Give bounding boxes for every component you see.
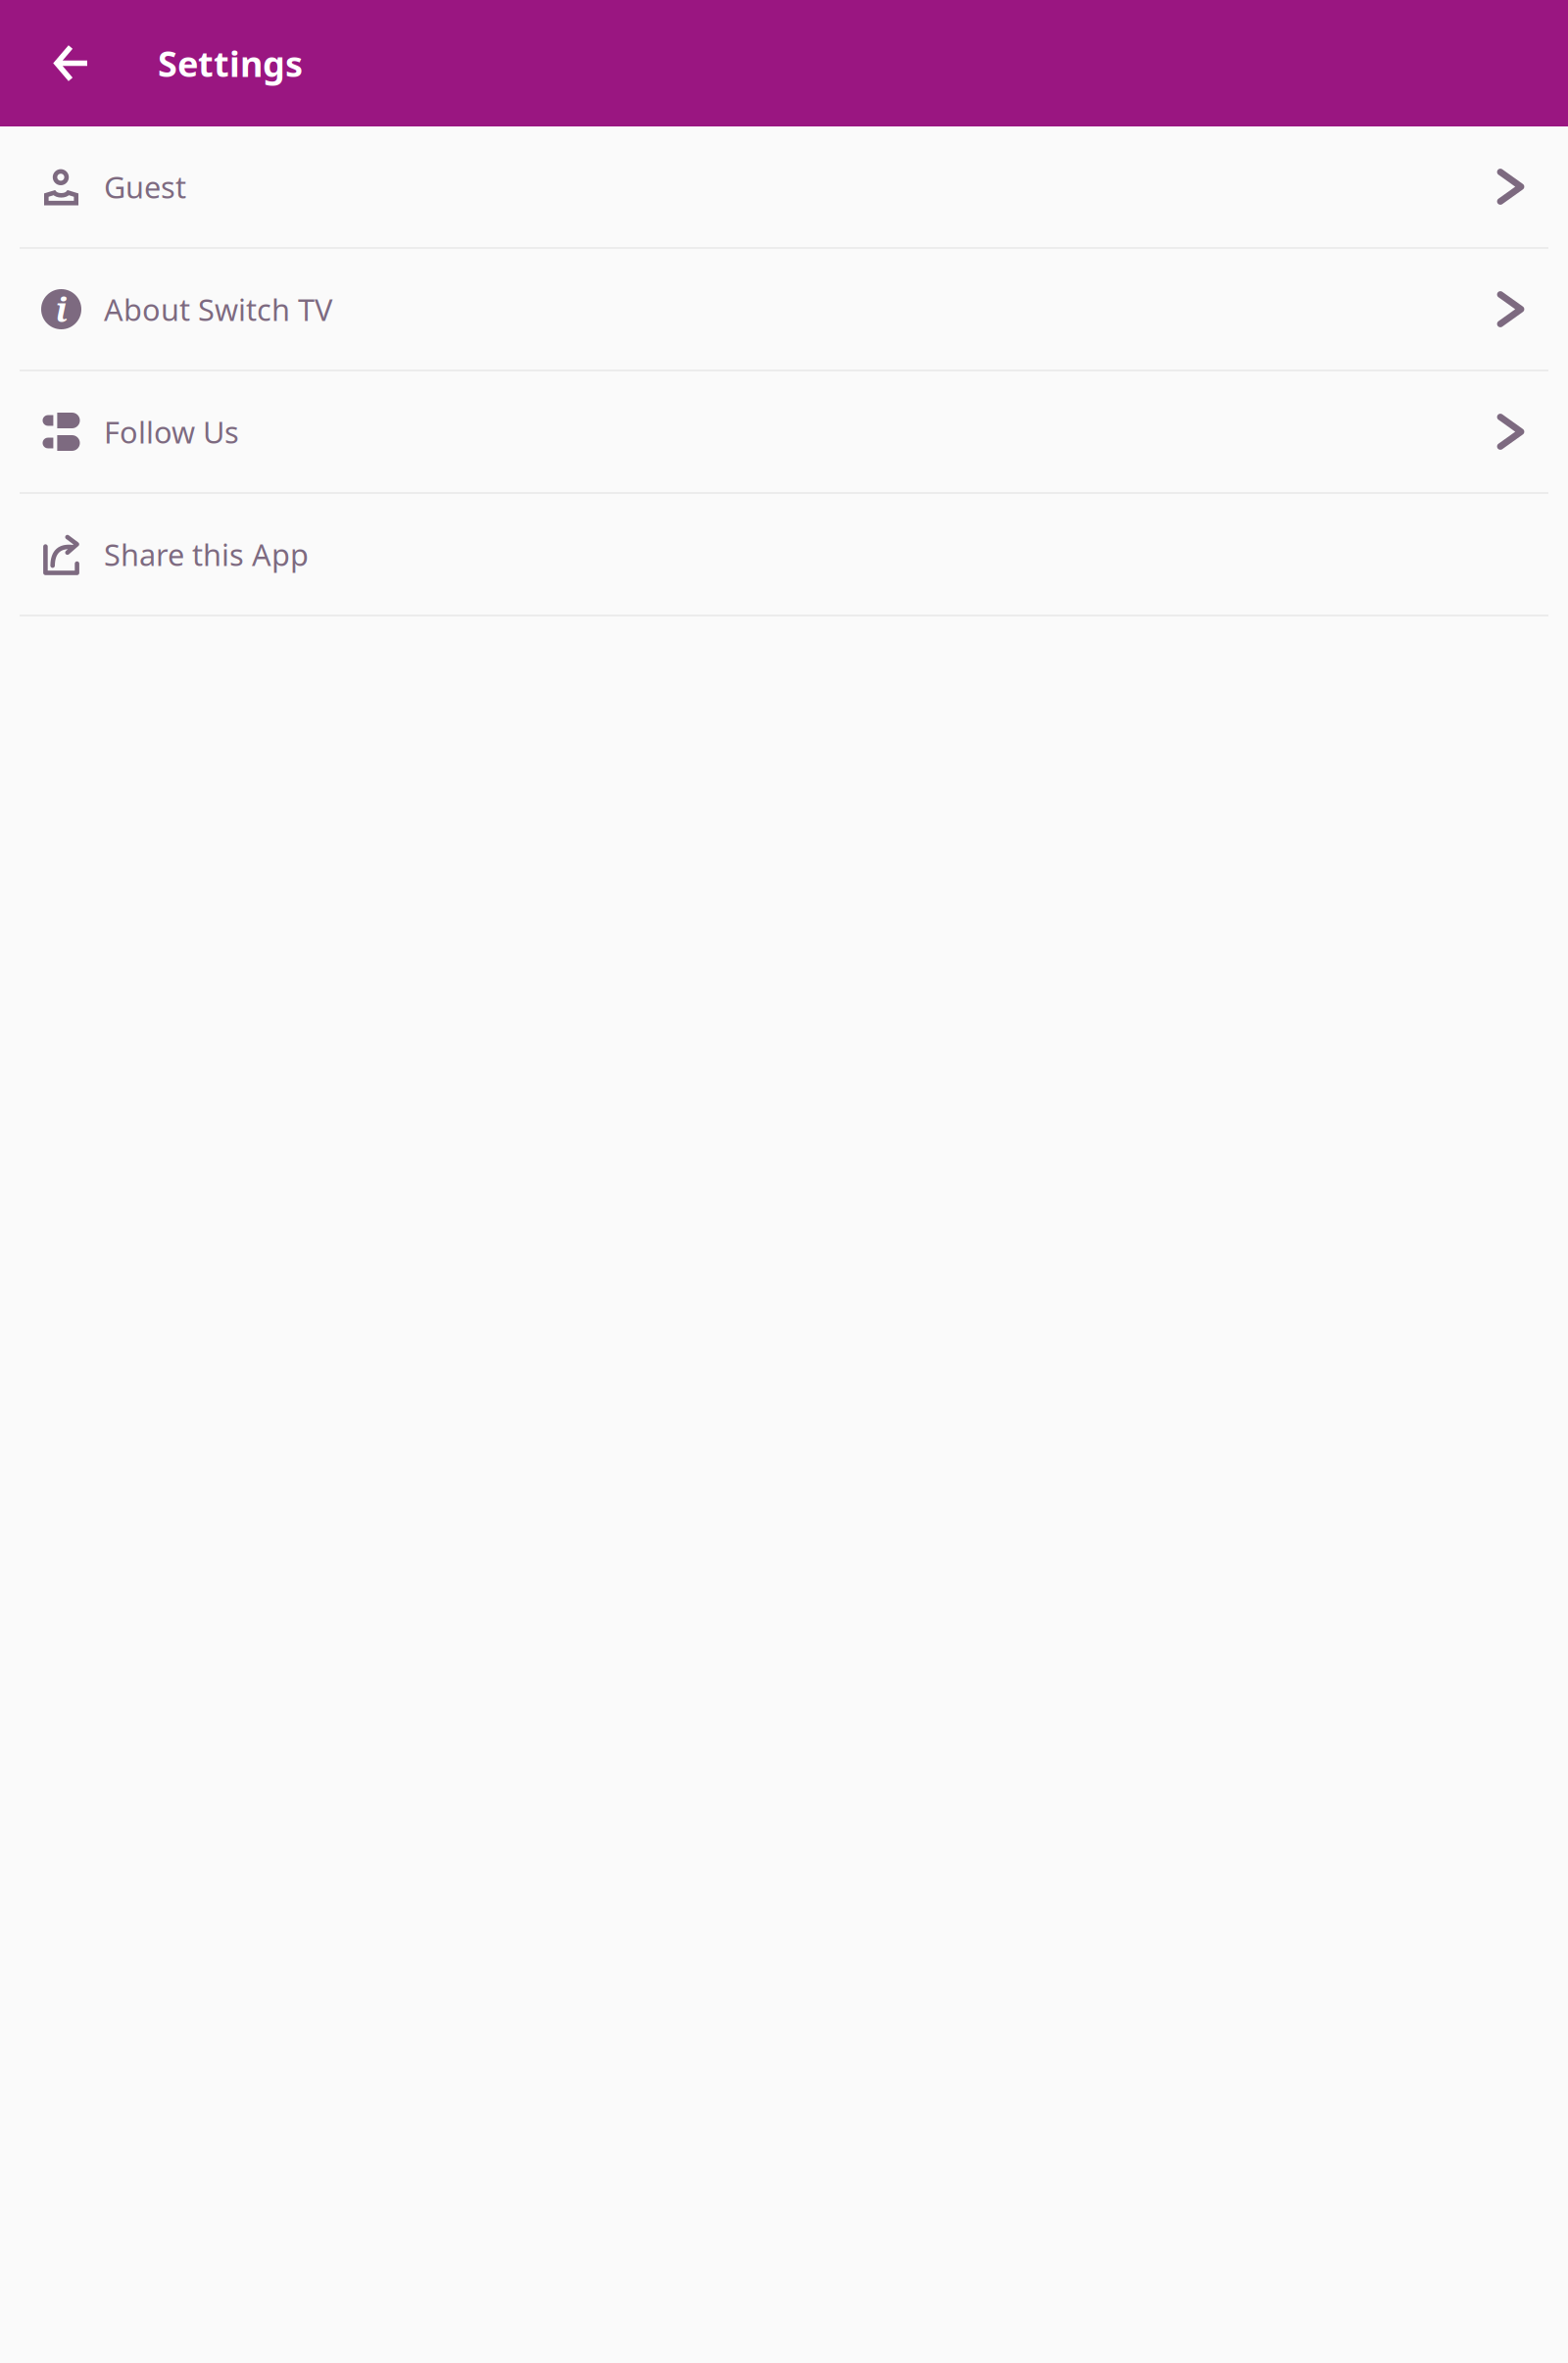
button[interactable]: Share this App: [0, 494, 1568, 616]
button[interactable]: Guest: [0, 126, 1568, 249]
button[interactable]: Follow Us: [0, 371, 1568, 494]
staticText: Follow Us: [104, 412, 239, 452]
staticText: i: [55, 286, 67, 332]
staticText: Share this App: [104, 534, 309, 574]
staticText: Guest: [104, 167, 186, 207]
button[interactable]: Back: [0, 0, 158, 126]
button[interactable]: i: [0, 249, 1568, 371]
staticText: About Switch TV: [104, 289, 332, 329]
staticText: Settings: [158, 40, 303, 87]
